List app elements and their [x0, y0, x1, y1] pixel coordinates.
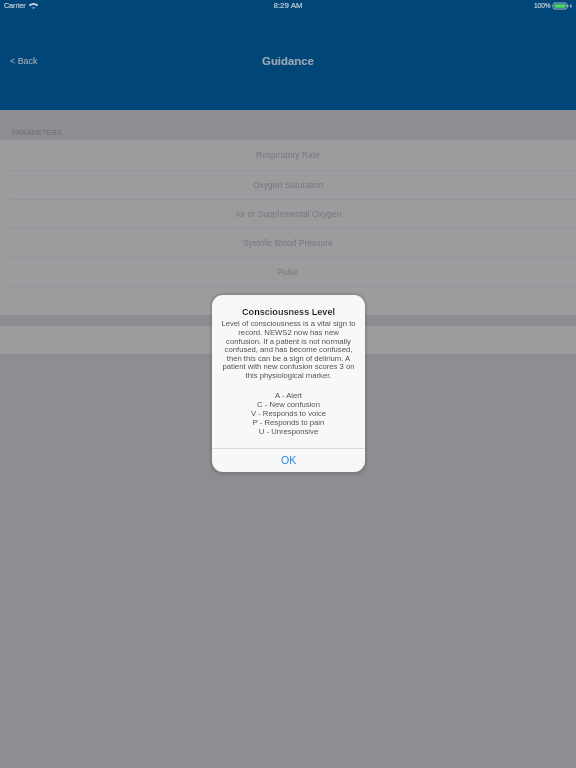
button[interactable]: Guidance Information — [0, 326, 576, 354]
button[interactable]: < Back — [4, 51, 44, 71]
other: Battery full, charging — [553, 3, 573, 9]
staticText: patient with new confusion scores 3 on — [212, 362, 365, 371]
staticText: then this can be a sign of delirium. A — [212, 354, 365, 363]
staticText: P - Responds to pain — [212, 418, 365, 427]
staticText: < Back — [10, 56, 38, 66]
staticText: this physiological marker. — [212, 371, 365, 380]
staticText: Guidance Information — [247, 336, 329, 345]
button[interactable]: Consciousness Level — [0, 286, 576, 315]
staticText: C - New confusion — [212, 400, 365, 409]
staticText: Level of consciousness is a vital sign t… — [212, 319, 365, 328]
staticText: Consciousness Level — [212, 307, 365, 317]
staticText: confused, and has become confused, — [212, 345, 365, 354]
staticText: Pulse — [277, 267, 299, 276]
staticText: Carrier — [4, 2, 26, 10]
staticText: A - Alert — [212, 391, 365, 400]
staticText: OK — [281, 454, 297, 466]
staticText: 8:29 AM — [0, 1, 576, 10]
staticText: V - Responds to voice — [212, 409, 365, 418]
staticText: 100% — [534, 2, 551, 9]
staticText: U - Unresponsive — [212, 427, 365, 436]
button[interactable]: OK — [212, 448, 365, 472]
button[interactable]: Air or Supplemental Oxygen — [0, 199, 576, 228]
staticText: record. NEWS2 now has new — [212, 328, 365, 337]
staticText: Oxygen Saturation — [253, 180, 324, 189]
button[interactable]: Systolic Blood Pressure — [0, 228, 576, 257]
staticText: Systolic Blood Pressure — [243, 238, 333, 247]
staticText: Air or Supplemental Oxygen — [235, 209, 342, 218]
staticText: Guidance — [0, 55, 576, 68]
staticText: Respiratory Rate — [256, 150, 320, 159]
other: Wi-Fi signal — [29, 1, 38, 9]
staticText: confusion. If a patient is not normally — [212, 337, 365, 346]
staticText: PARAMETERS — [12, 128, 62, 136]
